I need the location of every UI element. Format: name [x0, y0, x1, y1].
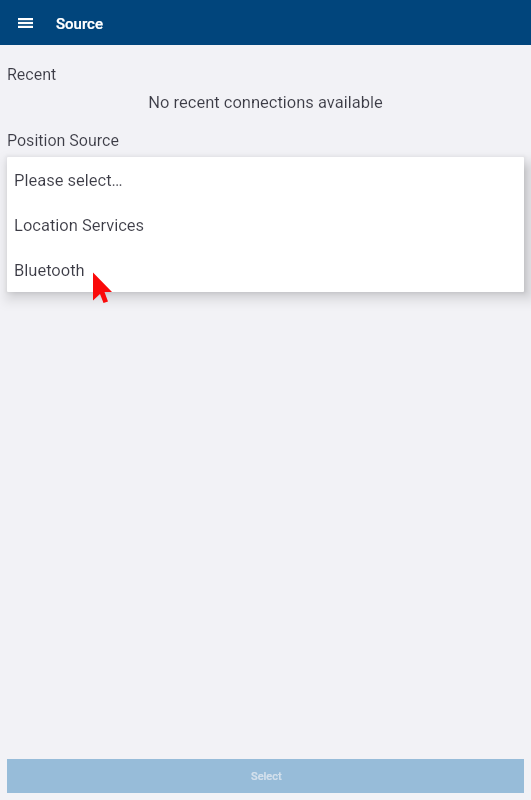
- staticText: No recent connections available: [0, 93, 531, 112]
- staticText: Bluetooth: [14, 261, 85, 280]
- button[interactable]: Please select…: [7, 157, 524, 202]
- button[interactable]: Open navigation menu: [3, 5, 47, 40]
- staticText: Position Source: [7, 131, 119, 150]
- staticText: Select: [251, 770, 282, 783]
- staticText: Recent: [7, 65, 57, 84]
- button[interactable]: Select: [7, 759, 524, 793]
- button[interactable]: Location Services: [7, 202, 524, 247]
- staticText: Please select…: [14, 171, 123, 190]
- button[interactable]: Bluetooth: [7, 247, 524, 292]
- staticText: Location Services: [14, 216, 145, 235]
- staticText: Source: [56, 15, 103, 33]
